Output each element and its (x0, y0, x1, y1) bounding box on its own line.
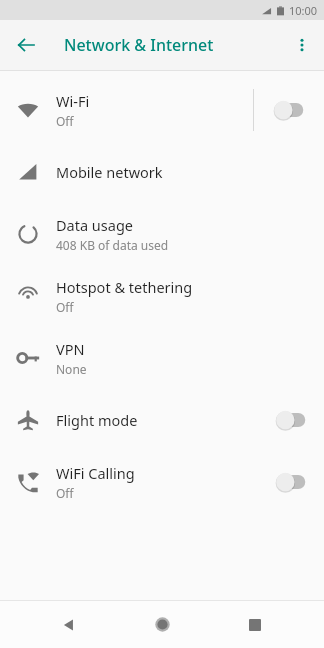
button[interactable]: Recent apps (231, 601, 279, 648)
staticText: Data usage (56, 215, 133, 235)
button[interactable]: Data usage (0, 203, 324, 265)
staticText: VPN (56, 339, 85, 359)
staticText: 408 KB of data used (56, 237, 169, 253)
button[interactable]: Mobile network (0, 141, 324, 203)
staticText: Off (56, 485, 74, 501)
button[interactable]: Flight mode (0, 389, 324, 451)
button[interactable]: Back (45, 601, 93, 648)
staticText: Network & Internet (64, 34, 214, 56)
staticText: Hotspot & tethering (56, 277, 193, 297)
button[interactable]: Wi-Fi toggle (254, 79, 324, 141)
staticText: Flight mode (56, 410, 138, 430)
staticText: None (56, 361, 87, 377)
button[interactable]: Wi-Fi (0, 79, 324, 141)
button[interactable]: VPN (0, 327, 324, 389)
staticText: Wi-Fi (56, 91, 90, 111)
button[interactable]: WiFi Calling (0, 451, 324, 513)
staticText: Off (56, 299, 74, 315)
staticText: 10:00 (289, 3, 318, 18)
staticText: Mobile network (56, 162, 163, 182)
button[interactable]: Back (8, 27, 44, 63)
button[interactable]: Hotspot & tethering (0, 265, 324, 327)
button[interactable]: WiFi Calling toggle (258, 451, 324, 513)
staticText: Off (56, 113, 74, 129)
staticText: WiFi Calling (56, 463, 135, 483)
button[interactable]: Flight mode toggle (258, 389, 324, 451)
button[interactable]: More options (284, 27, 320, 63)
button[interactable]: Home (138, 601, 186, 648)
